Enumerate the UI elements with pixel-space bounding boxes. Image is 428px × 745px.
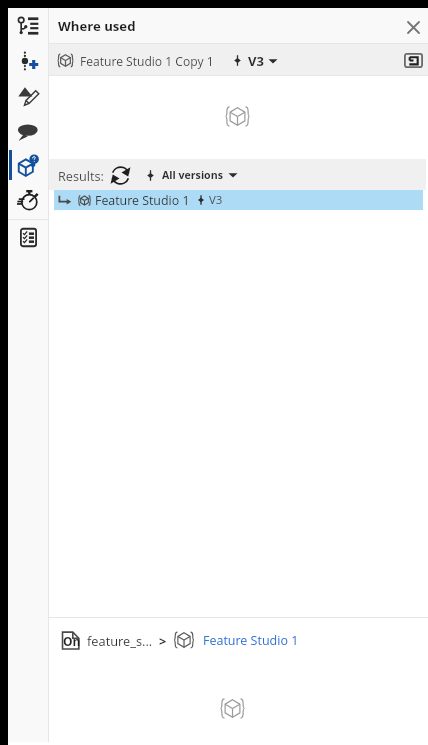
button[interactable]: All versions — [145, 168, 238, 182]
button[interactable]: Feature Studio 1 — [54, 190, 423, 210]
button[interactable]: Comments — [8, 114, 48, 148]
button[interactable]: Performance — [8, 183, 48, 217]
staticText: On — [63, 633, 81, 649]
staticText: All versions — [162, 168, 223, 182]
staticText: V3 — [248, 52, 264, 70]
staticText: Results: — [58, 167, 104, 184]
staticText: Feature Studio 1 Copy 1 — [80, 53, 214, 69]
button[interactable]: Insert feature — [8, 44, 48, 78]
button[interactable]: Tasks — [8, 220, 48, 254]
button[interactable]: Feature Studio 1 — [203, 632, 299, 649]
button[interactable]: Sketch — [8, 79, 48, 113]
button[interactable]: Refresh — [109, 164, 131, 186]
button[interactable]: Feature list — [8, 9, 48, 43]
staticText: Where used — [58, 17, 136, 35]
staticText: Feature Studio 1 — [95, 192, 190, 209]
staticText: V3 — [209, 192, 223, 208]
button[interactable]: Close — [400, 13, 426, 39]
button[interactable]: Open in panel — [401, 48, 425, 72]
button[interactable]: Where used — [8, 148, 48, 182]
staticText: feature_s... — [87, 632, 153, 649]
staticText: > — [159, 632, 167, 649]
staticText: Feature Studio 1 — [203, 632, 299, 649]
